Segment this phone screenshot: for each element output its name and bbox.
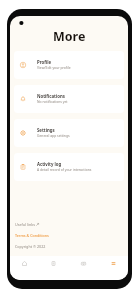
staticText: Profile xyxy=(37,59,51,65)
staticText: Activity log xyxy=(37,161,62,167)
staticText: A detail record of your interactions xyxy=(37,167,92,172)
button[interactable]: Documents xyxy=(39,256,68,280)
button[interactable]: Notifications xyxy=(14,85,124,113)
button[interactable]: Terms & Conditions xyxy=(15,233,49,238)
staticText: No notifications yet xyxy=(37,99,68,104)
button[interactable]: Profile xyxy=(14,51,124,79)
staticText: View/Edit your profile xyxy=(37,65,71,70)
button[interactable]: Camera xyxy=(68,256,98,280)
staticText: Settings xyxy=(37,127,55,133)
staticText: More xyxy=(53,28,86,42)
button[interactable]: Useful links xyxy=(15,222,39,227)
staticText: General app settings xyxy=(37,133,70,138)
staticText: Useful links xyxy=(15,222,35,227)
staticText: Notifications xyxy=(37,93,65,99)
button[interactable]: Menu xyxy=(98,256,128,280)
staticText: Copyright © 2022 xyxy=(15,244,46,249)
button[interactable]: Home xyxy=(10,256,39,280)
button[interactable]: Settings xyxy=(14,119,124,147)
button[interactable]: Activity log xyxy=(14,153,124,181)
